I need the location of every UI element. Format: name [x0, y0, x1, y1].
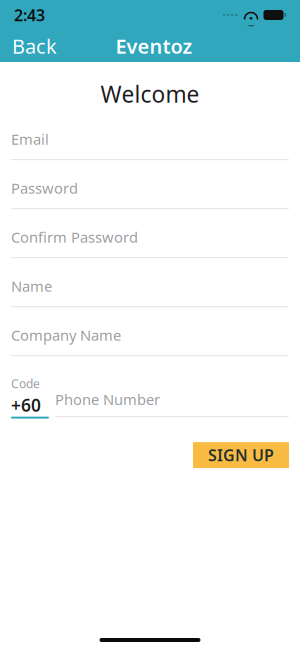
button[interactable]: Confirm Password — [11, 230, 289, 258]
staticText: Name — [11, 276, 52, 296]
button[interactable]: SIGN UP — [193, 442, 289, 468]
button[interactable]: Name — [11, 279, 289, 307]
staticText: Email — [11, 129, 49, 149]
button[interactable]: Phone Number — [55, 377, 289, 417]
staticText: Eventoz — [115, 33, 192, 59]
button[interactable]: Password — [11, 181, 289, 209]
staticText: SIGN UP — [208, 444, 274, 466]
button[interactable]: Code — [11, 377, 49, 417]
staticText: Company Name — [11, 325, 121, 345]
staticText: Confirm Password — [11, 227, 138, 247]
staticText: Code — [11, 376, 40, 391]
button[interactable]: Back — [0, 27, 69, 65]
staticText: 2:43 — [14, 4, 45, 26]
staticText: Password — [11, 178, 78, 198]
button[interactable]: Company Name — [11, 328, 289, 356]
staticText: Back — [12, 33, 57, 59]
staticText: Welcome — [100, 79, 199, 109]
button[interactable]: Email — [11, 132, 289, 160]
staticText: +60 — [11, 394, 41, 417]
staticText: Phone Number — [55, 390, 160, 409]
